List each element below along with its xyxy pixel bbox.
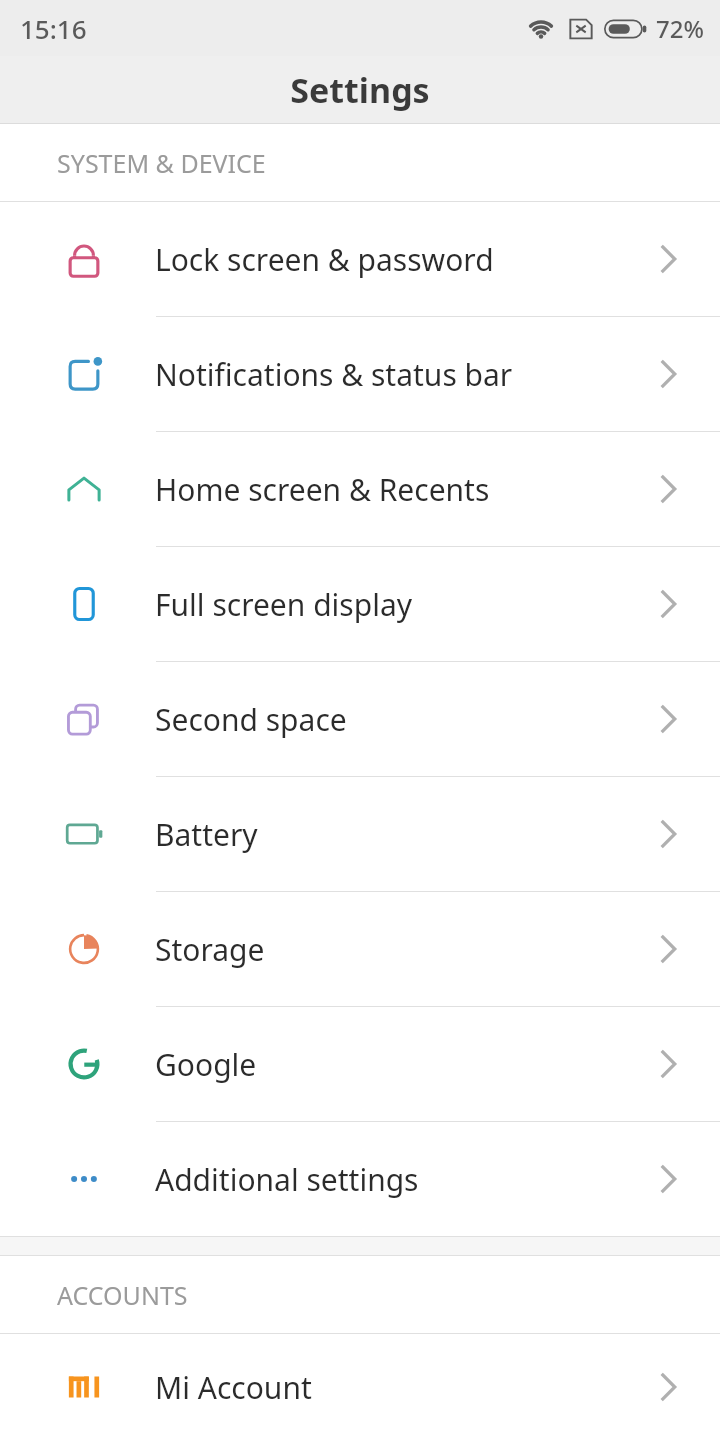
button[interactable]: Additional settings — [0, 1122, 720, 1236]
staticText: Additional settings — [155, 1159, 648, 1200]
staticText: Lock screen & password — [155, 239, 648, 280]
staticText: Settings — [290, 67, 430, 113]
button[interactable]: Lock screen & password — [0, 202, 720, 316]
staticText: Battery — [155, 814, 648, 855]
staticText: Storage — [155, 929, 648, 970]
staticText: Home screen & Recents — [155, 469, 648, 510]
button[interactable]: Notifications & status bar — [0, 317, 720, 431]
staticText: ACCOUNTS — [57, 1278, 188, 1312]
button[interactable]: Full screen display — [0, 547, 720, 661]
staticText: Second space — [155, 699, 648, 740]
staticText: Notifications & status bar — [155, 354, 648, 395]
button[interactable]: Mi Account — [0, 1334, 720, 1440]
button[interactable]: Storage — [0, 892, 720, 1006]
staticText: SYSTEM & DEVICE — [57, 146, 266, 180]
button[interactable]: Second space — [0, 662, 720, 776]
staticText: 72% — [656, 12, 704, 45]
button[interactable]: Home screen & Recents — [0, 432, 720, 546]
staticText: Full screen display — [155, 584, 648, 625]
button[interactable]: Battery — [0, 777, 720, 891]
button[interactable]: Google — [0, 1007, 720, 1121]
staticText: 15:16 — [20, 11, 87, 46]
staticText: Mi Account — [155, 1367, 648, 1408]
staticText: Google — [155, 1044, 648, 1085]
